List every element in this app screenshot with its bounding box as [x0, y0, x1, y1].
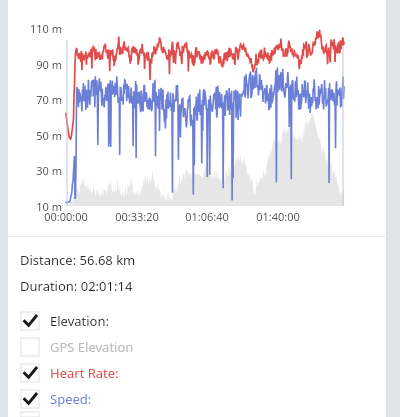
staticText: Elevation:	[50, 312, 109, 330]
button[interactable]: GPS Elevation	[8, 334, 386, 360]
button[interactable]: Speed:	[8, 386, 386, 412]
staticText: 50 m	[12, 128, 62, 143]
staticText: 110 m	[12, 21, 62, 36]
staticText: GPS Elevation	[50, 338, 134, 356]
other: Elevation:	[21, 312, 39, 330]
staticText: Duration: 02:01:14	[20, 277, 133, 295]
staticText: 01:40:00	[243, 209, 313, 224]
staticText: Speed:	[50, 390, 92, 408]
staticText: 70 m	[12, 92, 62, 107]
button[interactable]: Heart Rate:	[8, 360, 386, 386]
staticText: 00:33:20	[102, 209, 172, 224]
other: Heart Rate:	[21, 364, 39, 382]
staticText: Heart Rate:	[50, 364, 119, 382]
other: GPS Elevation	[21, 338, 39, 356]
staticText: Distance: 56.68 km	[20, 251, 136, 269]
button[interactable]: Elevation:	[8, 308, 386, 334]
other: Toggle	[21, 412, 39, 417]
staticText: 01:06:40	[172, 209, 242, 224]
staticText: 30 m	[12, 163, 62, 178]
staticText: 10 m	[12, 199, 62, 214]
staticText: 00:00:00	[31, 209, 101, 224]
other: Speed:	[21, 390, 39, 408]
staticText: 90 m	[12, 57, 62, 72]
